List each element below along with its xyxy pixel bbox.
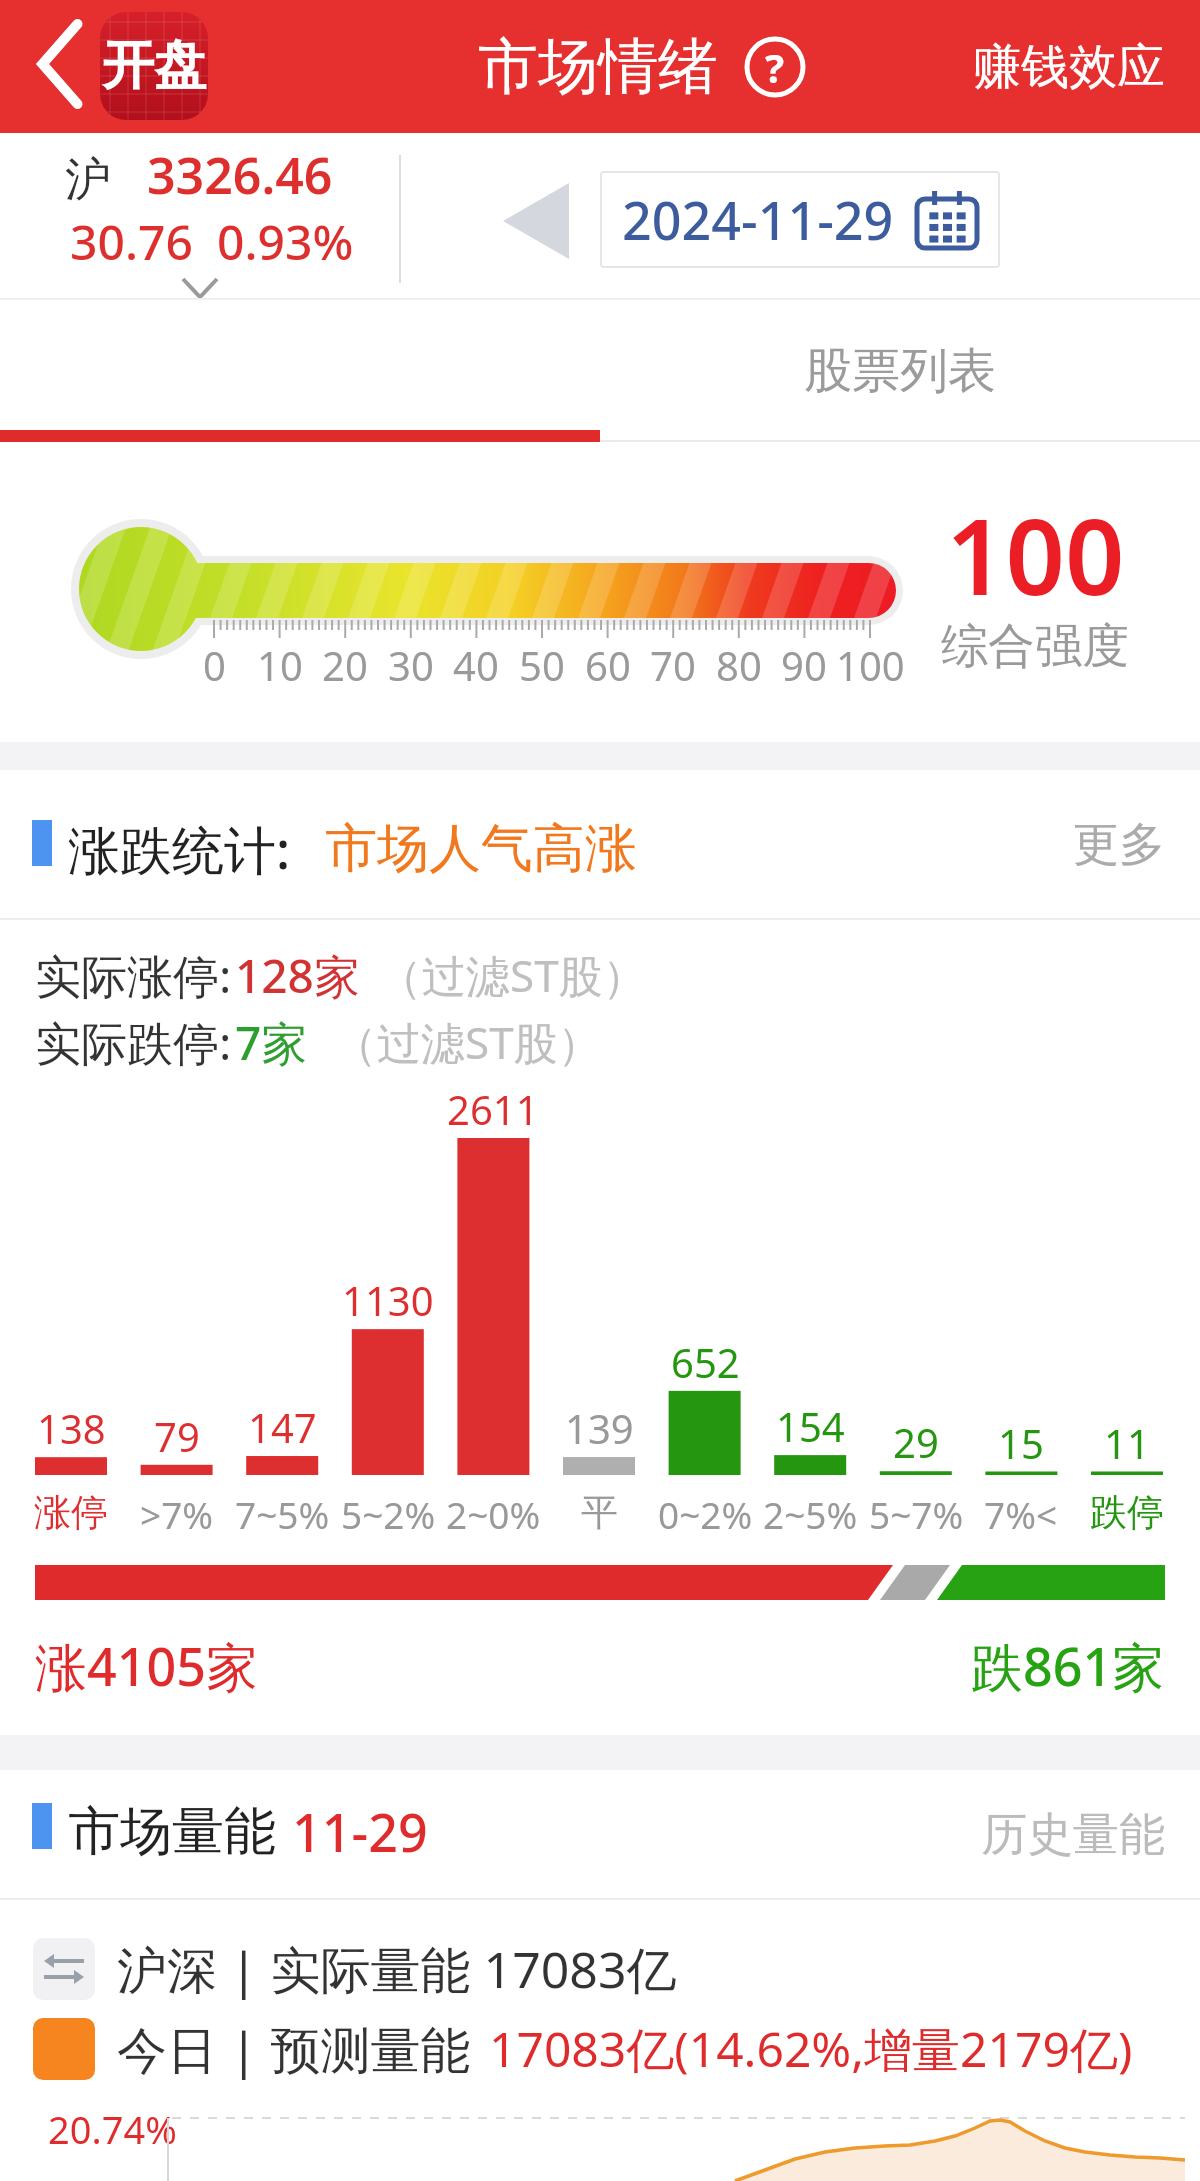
staticText: 跌861家 <box>971 1630 1165 1701</box>
staticText: 0.93% <box>217 209 354 274</box>
staticText: 15 <box>998 1416 1044 1470</box>
button[interactable] <box>20 8 100 120</box>
staticText: 5~2% <box>341 1489 436 1539</box>
button[interactable]: 2024-11-29 <box>600 171 1000 268</box>
button[interactable]: 今日 | 预测量能 <box>33 2015 1133 2083</box>
button[interactable]: 股票列表 <box>600 300 1200 442</box>
button[interactable] <box>0 300 600 442</box>
button[interactable]: 沪 <box>65 141 354 274</box>
staticText: 40 <box>453 638 499 692</box>
staticText: 市场情绪 <box>478 29 718 105</box>
staticText: 平 <box>581 1489 618 1536</box>
staticText: 138 <box>37 1401 106 1455</box>
staticText: 29 <box>893 1415 939 1469</box>
staticText: 沪 <box>65 151 111 209</box>
staticText: 沪深 | 实际量能 17083亿 <box>117 1935 677 2003</box>
staticText: 实际涨停: <box>35 944 232 1007</box>
staticText: 2024-11-29 <box>622 184 894 255</box>
staticText: 2~5% <box>763 1489 858 1539</box>
staticText: 80 <box>716 638 762 692</box>
staticText: 2~0% <box>446 1489 541 1539</box>
staticText: 147 <box>248 1400 317 1454</box>
staticText: 139 <box>565 1401 634 1455</box>
staticText: 跌停 <box>1090 1489 1164 1536</box>
staticText: 30.76 <box>70 209 193 274</box>
staticText: 市场人气高涨 <box>325 816 637 882</box>
button[interactable]: 开盘 <box>100 12 208 120</box>
staticText: 0 <box>203 638 226 692</box>
staticText: 7家 <box>235 1011 308 1074</box>
staticText: 79 <box>154 1409 200 1463</box>
staticText: 1130 <box>342 1273 434 1327</box>
staticText: （过滤ST股） <box>378 945 647 1005</box>
staticText: 10 <box>257 638 303 692</box>
button[interactable]: 沪深 | 实际量能 17083亿 <box>33 1935 677 2003</box>
staticText: （过滤ST股） <box>333 1012 602 1072</box>
staticText: 综合强度 <box>941 617 1129 676</box>
staticText: 0~2% <box>658 1489 753 1539</box>
staticText: 100 <box>836 638 905 692</box>
button[interactable]: ? <box>744 36 806 98</box>
staticText: 股票列表 <box>804 341 996 401</box>
staticText: 更多 <box>1073 816 1165 874</box>
staticText: 涨4105家 <box>35 1630 258 1701</box>
staticText: 开盘 <box>102 33 206 99</box>
button[interactable] <box>503 183 569 259</box>
staticText: 50 <box>519 638 565 692</box>
staticText: 30 <box>388 638 434 692</box>
staticText: 3326.46 <box>147 141 333 209</box>
staticText: 11 <box>1104 1416 1150 1470</box>
staticText: 实际跌停: <box>35 1011 232 1074</box>
staticText: 20.74% <box>48 2103 177 2155</box>
staticText: 赚钱效应 <box>973 37 1165 97</box>
staticText: 涨停 <box>34 1489 108 1536</box>
staticText: 17083亿(14.62%,增量2179亿) <box>489 2016 1133 2082</box>
staticText: 60 <box>585 638 631 692</box>
staticText: 历史量能 <box>981 1806 1165 1864</box>
staticText: 今日 | 预测量能 <box>117 2015 471 2083</box>
staticText: 5~7% <box>869 1489 964 1539</box>
staticText: 154 <box>776 1399 845 1453</box>
staticText: 20 <box>322 638 368 692</box>
staticText: 7%< <box>984 1489 1058 1539</box>
button[interactable]: 历史量能 <box>981 1806 1165 1864</box>
staticText: 652 <box>671 1335 740 1389</box>
staticText: >7% <box>140 1489 214 1539</box>
staticText: 2611 <box>447 1082 539 1136</box>
staticText: 128家 <box>235 944 360 1007</box>
staticText: 11-29 <box>292 1796 428 1867</box>
staticText: ? <box>765 40 785 94</box>
staticText: 70 <box>650 638 696 692</box>
staticText: 7~5% <box>235 1489 330 1539</box>
staticText: 市场量能 <box>68 1799 276 1865</box>
staticText: 涨跌统计: <box>68 813 291 884</box>
button[interactable]: 更多 <box>1073 816 1165 874</box>
staticText: 100 <box>946 484 1125 626</box>
button[interactable]: 赚钱效应 <box>973 37 1165 97</box>
staticText: 90 <box>781 638 827 692</box>
